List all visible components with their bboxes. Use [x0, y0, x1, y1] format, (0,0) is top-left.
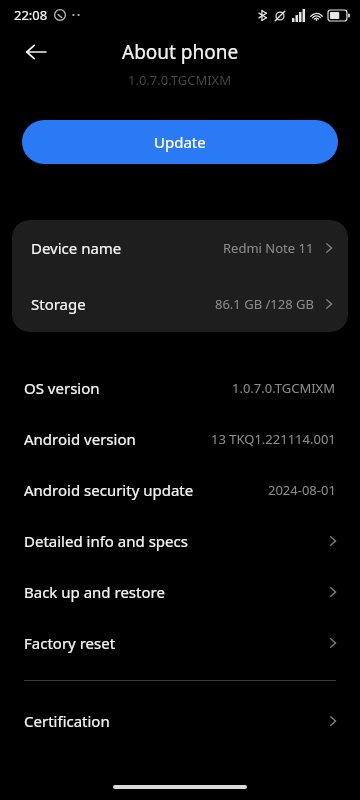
- staticText: 2024-08-01: [268, 481, 336, 499]
- staticText: About phone: [122, 39, 239, 65]
- staticText: Certification: [24, 711, 110, 731]
- button[interactable]: Android security update: [0, 464, 360, 515]
- staticText: Device name: [31, 238, 122, 258]
- staticText: Factory reset: [24, 633, 116, 653]
- staticText: Redmi Note 11: [223, 239, 314, 257]
- button[interactable]: Factory reset: [0, 617, 360, 668]
- button[interactable]: Certification: [0, 695, 360, 746]
- staticText: 1.0.7.0.TGCMIXM: [232, 379, 336, 397]
- staticText: Update: [154, 132, 206, 152]
- button[interactable]: Back up and restore: [0, 566, 360, 617]
- button[interactable]: Detailed info and specs: [0, 515, 360, 566]
- staticText: 86.1 GB /128 GB: [215, 295, 314, 313]
- button[interactable]: OS version: [0, 362, 360, 413]
- button[interactable]: Device name: [12, 220, 348, 276]
- staticText: 13 TKQ1.221114.001: [211, 430, 336, 448]
- staticText: Storage: [31, 294, 86, 314]
- button[interactable]: Update: [22, 120, 338, 164]
- staticText: OS version: [24, 378, 100, 398]
- button[interactable]: Storage: [12, 276, 348, 332]
- staticText: Android version: [24, 429, 136, 449]
- button[interactable]: Android version: [0, 413, 360, 464]
- staticText: Android security update: [24, 480, 194, 500]
- button[interactable]: Back: [14, 30, 58, 74]
- staticText: Back up and restore: [24, 582, 165, 602]
- staticText: Detailed info and specs: [24, 531, 188, 551]
- staticText: 22:08: [14, 6, 48, 24]
- staticText: 1.0.7.0.TGCMIXM: [128, 71, 232, 87]
